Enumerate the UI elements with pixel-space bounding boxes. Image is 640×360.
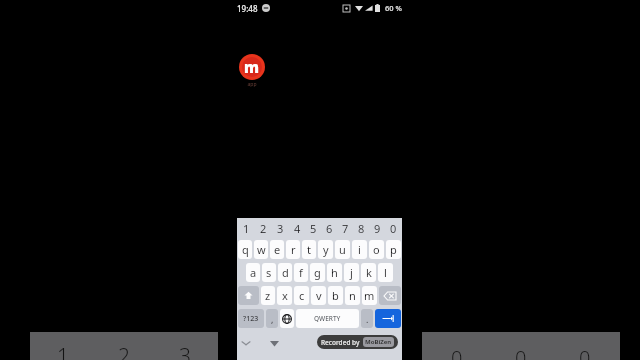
button[interactable]: p [386,240,401,259]
button[interactable]: q [238,240,252,259]
staticText: 8 [358,221,365,236]
button[interactable]: 1 [238,218,254,238]
button[interactable]: 4 [289,218,305,238]
button[interactable]: n [345,286,360,305]
staticText: q [242,242,249,257]
button[interactable]: y [318,240,333,259]
button[interactable]: d [278,263,292,282]
staticText: 1 [243,221,250,236]
staticText: b [332,288,339,303]
staticText: MoBiZen [365,338,392,346]
button[interactable]: Comma [266,309,278,328]
staticText: 9 [374,221,381,236]
staticText: 19:48 [237,3,258,14]
button[interactable]: g [310,263,325,282]
button[interactable]: b [328,286,343,305]
button[interactable]: 8 [354,218,369,238]
staticText: u [339,242,346,257]
staticText: z [265,288,271,303]
button[interactable]: QWERTY [296,309,359,328]
button[interactable]: 0 [492,344,550,360]
staticText: j [350,265,353,280]
staticText: r [291,242,296,257]
staticText: d [282,265,289,280]
button[interactable]: Enter [375,309,401,328]
staticText: p [390,242,397,257]
button[interactable]: 1 [35,342,91,360]
staticText: 3 [277,221,284,236]
staticText: 6 [326,221,333,236]
staticText: 2 [118,342,130,360]
staticText: m [364,288,375,303]
staticText: ?123 [243,314,259,324]
button[interactable]: 0 [556,344,614,360]
button[interactable]: 2 [255,218,271,238]
staticText: i [358,242,361,257]
staticText: h [331,265,338,280]
staticText: 60 % [385,3,402,13]
button[interactable]: 6 [322,218,337,238]
button[interactable]: Period [361,309,373,328]
button[interactable]: u [335,240,350,259]
button[interactable]: j [344,263,359,282]
staticText: n [349,288,356,303]
button[interactable]: Backspace [379,286,401,305]
button[interactable]: 0 [386,218,401,238]
staticText: 7 [342,221,349,236]
staticText: 4 [294,221,301,236]
button[interactable]: 5 [306,218,321,238]
button[interactable]: v [311,286,326,305]
button[interactable]: k [361,263,376,282]
button[interactable]: Collapse [239,336,253,350]
staticText: t [307,242,311,257]
staticText: m [244,57,260,77]
button[interactable]: 9 [370,218,385,238]
button[interactable]: w [254,240,268,259]
button[interactable]: f [294,263,308,282]
button[interactable]: Change language [280,309,294,328]
staticText: g [314,265,321,280]
button[interactable]: o [369,240,384,259]
staticText: s [266,265,272,280]
button[interactable]: 3 [157,342,213,360]
button[interactable]: 2 [96,342,152,360]
button[interactable]: e [270,240,284,259]
button[interactable]: t [302,240,316,259]
staticText: l [384,265,387,280]
button[interactable]: l [378,263,393,282]
button[interactable]: h [327,263,342,282]
staticText: f [299,265,303,280]
button[interactable]: ?123 [238,309,264,328]
staticText: app [247,81,257,88]
button[interactable]: s [262,263,276,282]
staticText: . [366,313,369,325]
staticText: o [373,242,380,257]
button[interactable]: r [286,240,300,259]
staticText: 5 [310,221,317,236]
staticText: 0 [579,344,591,360]
staticText: 0 [451,344,463,360]
button[interactable]: c [294,286,309,305]
staticText: QWERTY [314,314,341,323]
button[interactable]: a [246,263,260,282]
staticText: k [366,265,372,280]
staticText: 3 [179,342,191,360]
button[interactable]: 0 [428,344,486,360]
button[interactable]: m [362,286,377,305]
button[interactable]: App icon [239,54,265,80]
button[interactable]: Shift [238,286,259,305]
button[interactable]: 3 [272,218,288,238]
staticText: x [282,288,288,303]
staticText: v [316,288,322,303]
button[interactable]: i [352,240,367,259]
staticText: 0 [390,221,397,236]
button[interactable]: Hide keyboard [267,336,281,350]
button[interactable]: z [261,286,275,305]
staticText: w [257,242,266,257]
staticText: 0 [515,344,527,360]
button[interactable]: x [277,286,292,305]
staticText: y [323,242,329,257]
button[interactable]: 7 [338,218,353,238]
staticText: , [271,313,274,325]
staticText: 2 [260,221,267,236]
